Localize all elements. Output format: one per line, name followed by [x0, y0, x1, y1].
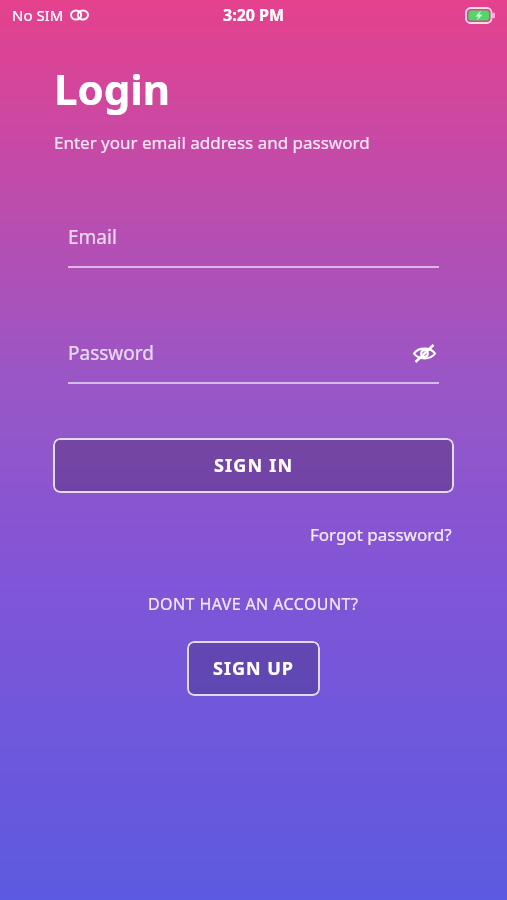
button[interactable]: Forgot password?: [306, 519, 456, 550]
staticText: SIGN IN: [214, 453, 294, 478]
staticText: DONT HAVE AN ACCOUNT?: [148, 593, 359, 615]
staticText: 3:20 PM: [223, 4, 285, 26]
staticText: Email: [68, 224, 117, 250]
button[interactable]: SIGN IN: [53, 438, 454, 493]
staticText: SIGN UP: [213, 656, 295, 681]
button[interactable]: Toggle password visibility: [409, 338, 439, 368]
staticText: Login: [54, 60, 171, 117]
staticText: Forgot password?: [310, 523, 452, 546]
staticText: Password: [68, 340, 154, 366]
button[interactable]: SIGN UP: [187, 641, 320, 696]
staticText: No SIM: [12, 5, 64, 25]
staticText: Enter your email address and password: [54, 131, 370, 154]
